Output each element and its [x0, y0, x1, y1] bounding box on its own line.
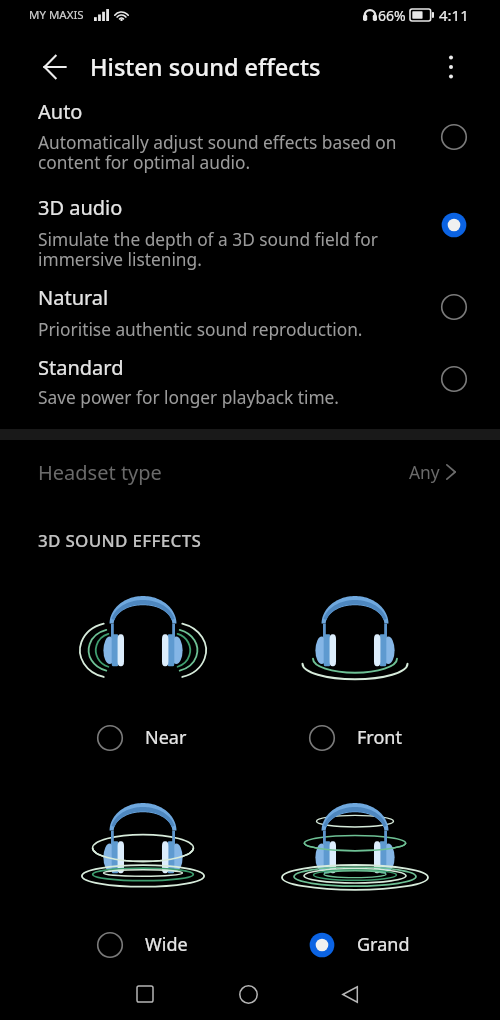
- button[interactable]: Standard: [0, 346, 500, 414]
- staticText: MY MAXIS: [29, 7, 84, 23]
- button[interactable]: More options: [429, 45, 473, 89]
- button[interactable]: Near: [38, 560, 250, 758]
- staticText: 3D audio: [38, 194, 123, 221]
- button[interactable]: Back: [323, 967, 377, 1020]
- staticText: 3D SOUND EFFECTS: [38, 529, 202, 552]
- button[interactable]: Wide: [38, 767, 250, 965]
- button[interactable]: Front: [250, 560, 462, 758]
- staticText: Any: [409, 460, 440, 484]
- staticText: Automatically adjust sound effects based…: [38, 131, 397, 174]
- staticText: Save power for longer playback time.: [38, 386, 339, 410]
- staticText: Simulate the depth of a 3D sound field f…: [38, 228, 378, 271]
- staticText: Grand: [357, 932, 410, 957]
- staticText: Near: [145, 725, 187, 750]
- button[interactable]: Recent apps: [118, 967, 172, 1020]
- staticText: Standard: [38, 354, 124, 381]
- staticText: 66%: [378, 6, 406, 25]
- button[interactable]: Auto: [0, 95, 500, 185]
- button[interactable]: 3D audio: [0, 186, 500, 276]
- button[interactable]: Headset type: [0, 448, 500, 496]
- staticText: Wide: [145, 932, 188, 957]
- staticText: Auto: [38, 98, 83, 125]
- staticText: Natural: [38, 284, 109, 311]
- staticText: Histen sound effects: [90, 51, 321, 83]
- staticText: Headset type: [38, 459, 162, 486]
- staticText: Front: [357, 725, 402, 750]
- staticText: Prioritise authentic sound reproduction.: [38, 318, 363, 342]
- button[interactable]: Grand: [250, 767, 462, 965]
- button[interactable]: Back: [32, 44, 78, 90]
- staticText: 4:11: [439, 5, 469, 25]
- button[interactable]: Home: [221, 967, 275, 1020]
- button[interactable]: Natural: [0, 277, 500, 345]
